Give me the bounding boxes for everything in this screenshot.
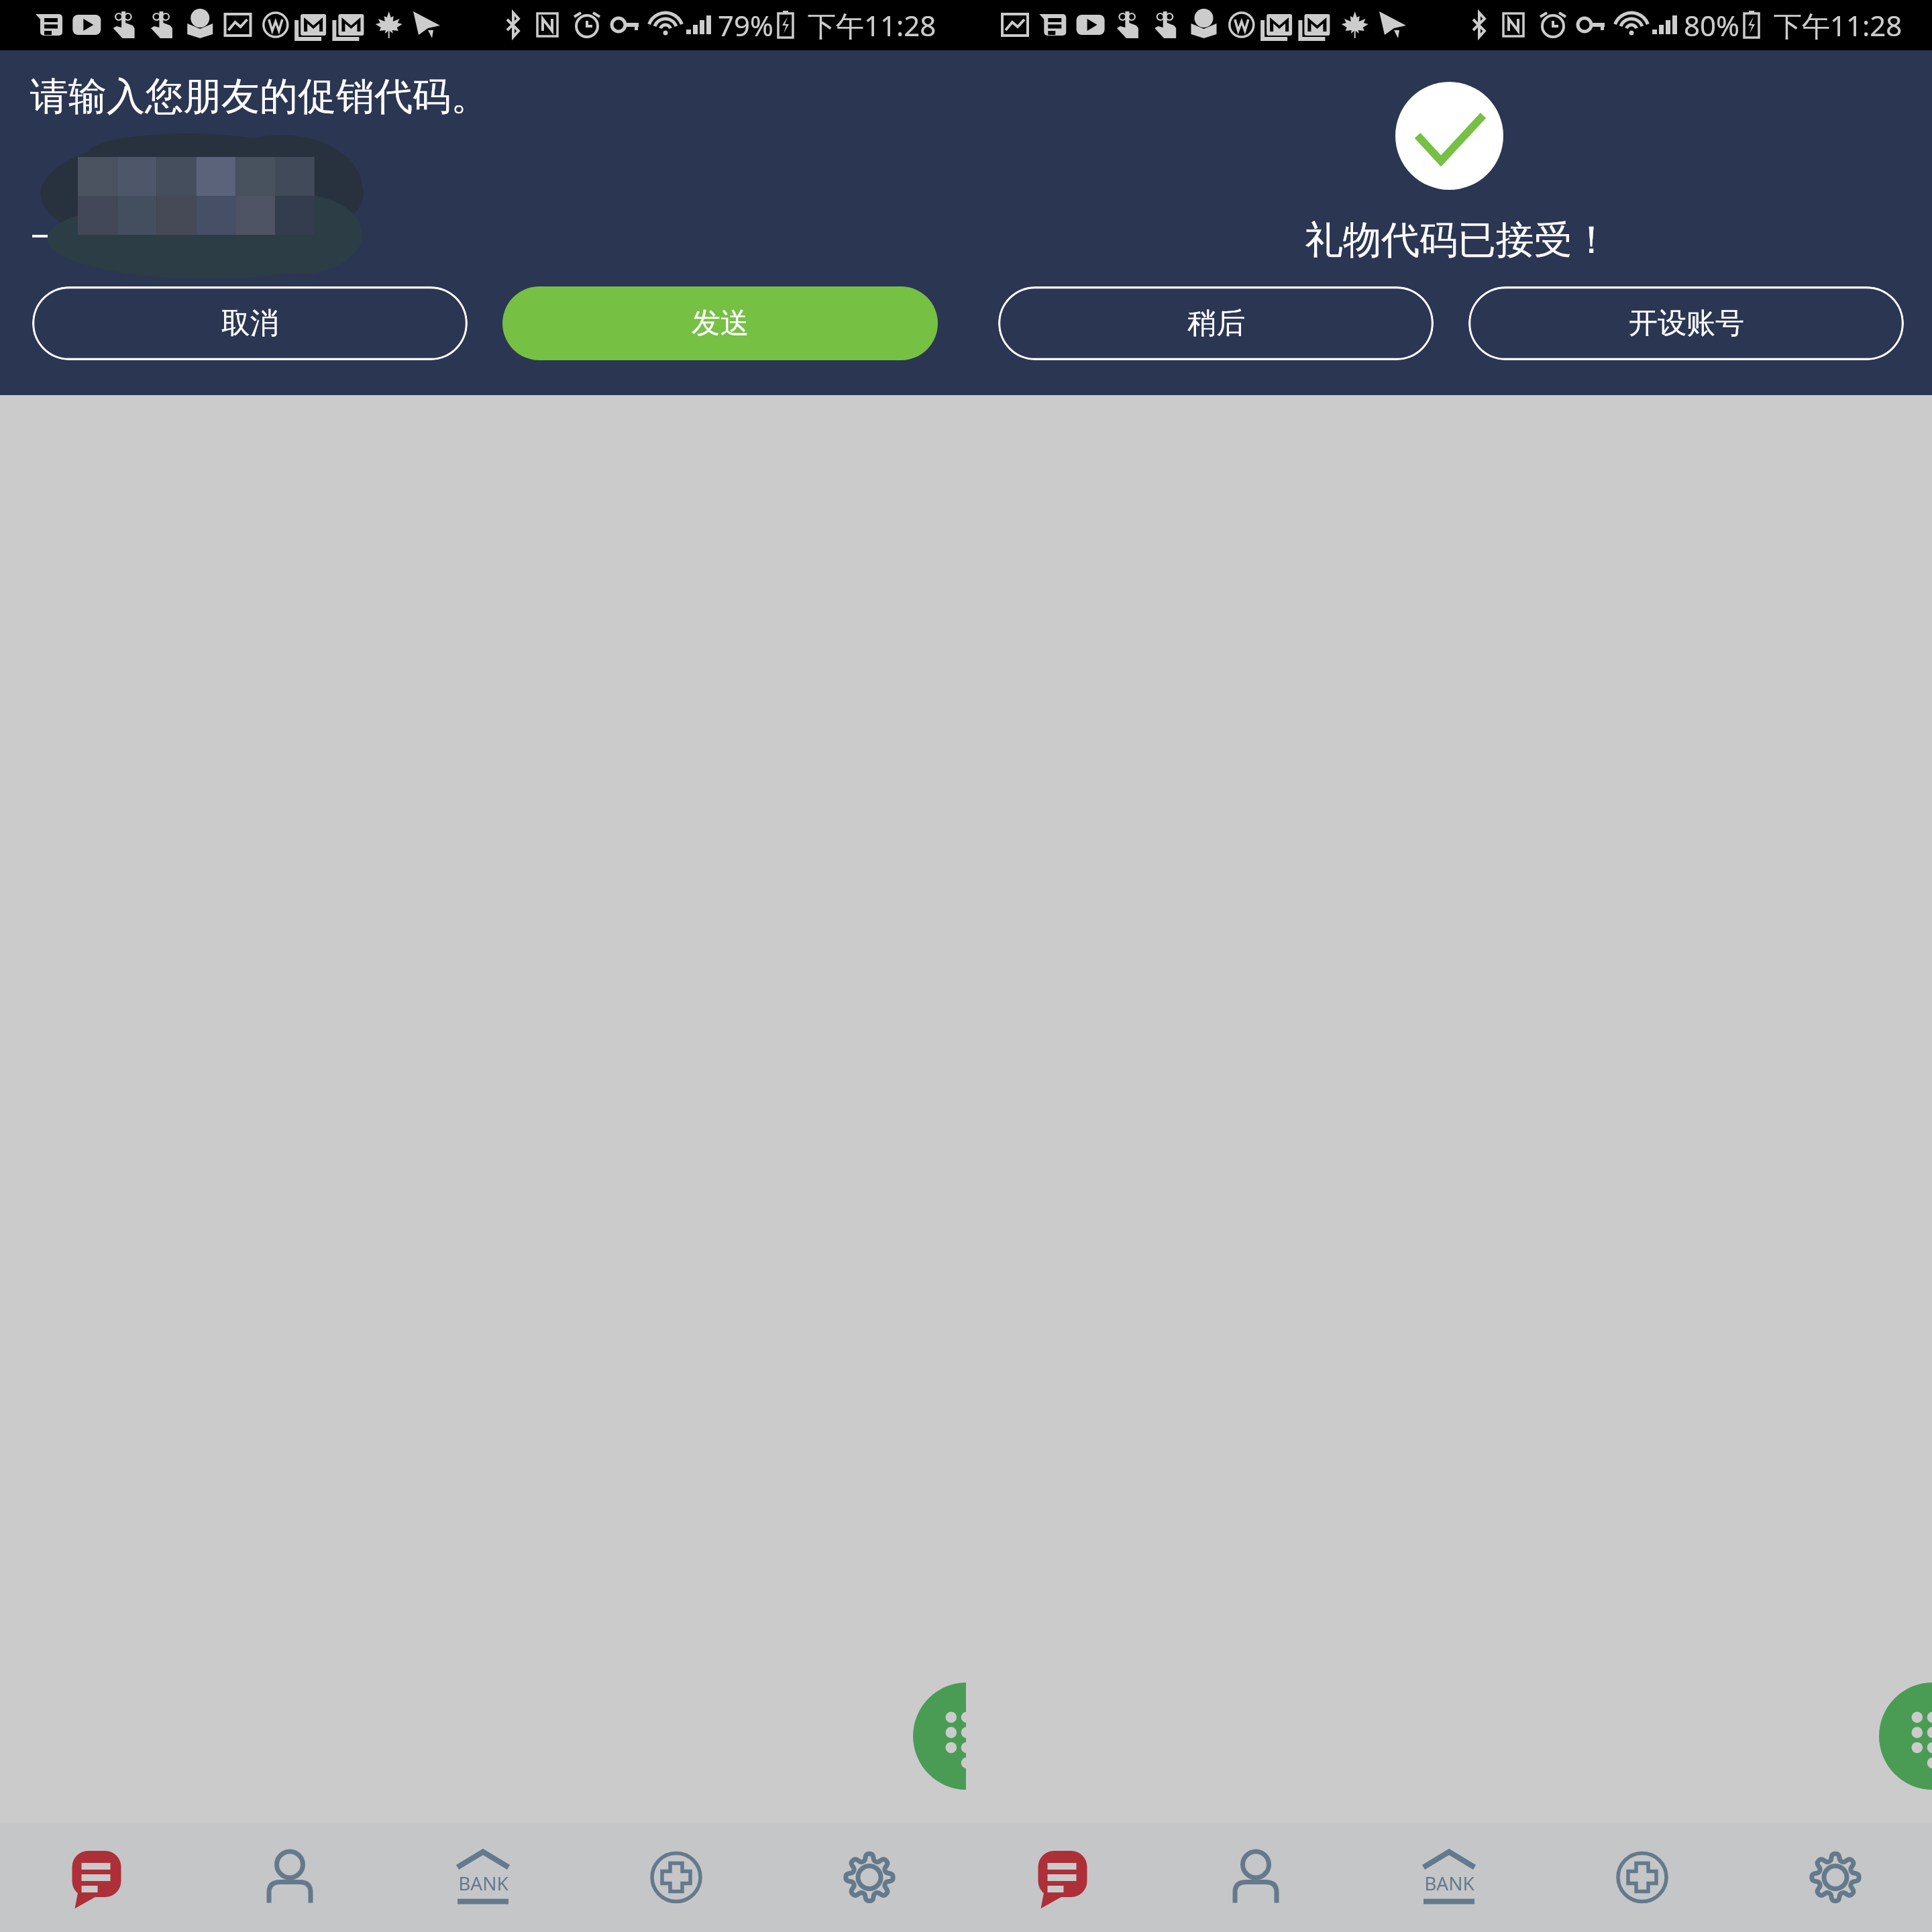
staticText: 取消 xyxy=(221,305,279,341)
staticText: 79% xyxy=(718,6,773,44)
button[interactable]: 开设账号 xyxy=(1468,286,1904,360)
staticText: 稍后 xyxy=(1187,305,1245,341)
button[interactable]: 稍后 xyxy=(998,286,1434,360)
staticText: 开设账号 xyxy=(1629,305,1744,341)
button[interactable]: Messages xyxy=(966,1823,1159,1932)
button[interactable]: Dialpad xyxy=(913,1682,1020,1790)
button[interactable]: 取消 xyxy=(32,286,468,360)
button[interactable]: Messages xyxy=(0,1823,193,1932)
button[interactable]: Bank xyxy=(386,1823,580,1932)
button[interactable]: Profile xyxy=(193,1823,386,1932)
button[interactable]: 发送 xyxy=(502,286,938,360)
staticText: 80% xyxy=(1684,6,1739,44)
button[interactable]: Settings xyxy=(773,1823,966,1932)
staticText: 礼物代码已接受！ xyxy=(1305,216,1611,264)
button[interactable]: Health xyxy=(1546,1823,1739,1932)
button[interactable]: Profile xyxy=(1159,1823,1352,1932)
staticText: BANK xyxy=(458,1870,508,1896)
staticText: 下午11:28 xyxy=(808,6,936,44)
button[interactable]: Dialpad xyxy=(1879,1682,1932,1790)
button[interactable]: Health xyxy=(580,1823,773,1932)
button[interactable]: Settings xyxy=(1739,1823,1932,1932)
button[interactable]: Bank xyxy=(1352,1823,1546,1932)
staticText: 请输入您朋友的促销代码。 xyxy=(30,72,489,121)
staticText: BANK xyxy=(1424,1870,1474,1896)
staticText: 发送 xyxy=(692,305,749,341)
staticText: 下午11:28 xyxy=(1774,6,1902,44)
